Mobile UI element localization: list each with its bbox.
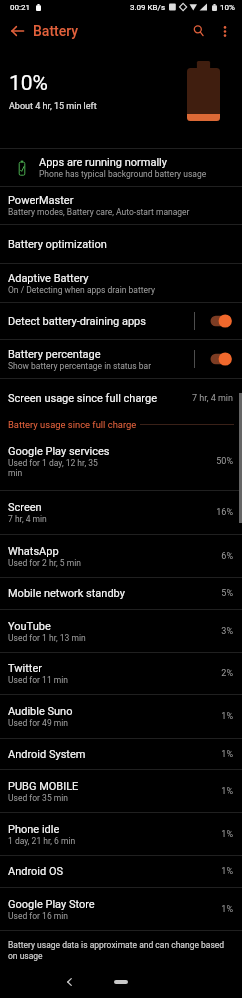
staticText: Google Play services (8, 445, 110, 458)
staticText: 2% (215, 668, 233, 679)
staticText: 1% (215, 866, 233, 877)
staticText: Used for 2 hr, 5 min (8, 558, 81, 568)
button[interactable]: Android OS (0, 856, 242, 887)
staticText: PUBG MOBILE (8, 780, 79, 793)
staticText: Used for 49 min (8, 718, 68, 728)
button[interactable]: Screen usage since full charge (0, 379, 242, 417)
button[interactable]: Battery percentage (0, 340, 242, 378)
staticText: Phone idle (8, 823, 60, 836)
button[interactable]: Toggle (209, 349, 233, 369)
button[interactable]: Google Play services (0, 432, 242, 490)
staticText: Adaptive Battery (8, 272, 89, 285)
staticText: Used for 1 hr, 13 min (8, 633, 86, 643)
button[interactable]: Android System (0, 739, 242, 769)
staticText: 3.09 KB/s (130, 3, 166, 12)
staticText: Battery usage since full charge (8, 419, 137, 430)
staticText: 16% (215, 507, 233, 518)
staticText: 1% (215, 786, 233, 797)
staticText: Battery optimization (8, 238, 107, 251)
staticText: Google Play Store (8, 898, 95, 911)
staticText: Show battery percentage in status bar (8, 361, 152, 371)
button[interactable]: Home (114, 980, 128, 984)
button[interactable]: Detect battery-draining apps (0, 303, 242, 339)
button[interactable]: PowerMaster (0, 187, 242, 224)
staticText: 10% (220, 3, 235, 12)
staticText: Phone has typical background battery usa… (39, 169, 207, 179)
staticText: PowerMaster (8, 194, 74, 207)
staticText: 1% (215, 904, 233, 915)
button[interactable]: Google Play Store (0, 888, 242, 930)
staticText: Used for 35 min (8, 793, 68, 803)
staticText: 7 hr, 4 min (191, 393, 233, 404)
button[interactable]: Apps are running normally (0, 149, 242, 186)
button[interactable]: Toggle (209, 311, 233, 331)
staticText: Mobile network standby (8, 587, 125, 600)
button[interactable]: Screen (0, 491, 242, 534)
staticText: Audible Suno (8, 705, 73, 718)
staticText: 1% (215, 829, 233, 840)
staticText: Screen (8, 501, 42, 514)
button[interactable]: Mobile network standby (0, 578, 242, 609)
button[interactable]: Twitter (0, 653, 242, 694)
button[interactable]: Back (6, 20, 28, 42)
staticText: 10% (9, 71, 48, 96)
staticText: On / Detecting when apps drain battery (8, 285, 155, 295)
staticText: 5% (215, 588, 233, 599)
staticText: Twitter (8, 662, 42, 675)
staticText: Android System (8, 748, 86, 761)
staticText: 00:21 (10, 3, 30, 12)
staticText: About 4 hr, 15 min left (9, 101, 97, 112)
staticText: Battery percentage (8, 348, 101, 361)
staticText: Used for 16 min (8, 911, 68, 921)
button[interactable]: Phone idle (0, 813, 242, 855)
staticText: WhatsApp (8, 545, 59, 558)
staticText: 1% (215, 749, 233, 760)
staticText: YouTube (8, 620, 51, 633)
button[interactable]: YouTube (0, 610, 242, 652)
button[interactable]: Adaptive Battery (0, 264, 242, 302)
button[interactable]: PUBG MOBILE (0, 770, 242, 812)
staticText: 1 day, 21 hr, 6 min (8, 836, 76, 846)
staticText: Screen usage since full charge (8, 392, 157, 405)
staticText: Battery usage data is approximate and ca… (8, 940, 234, 961)
staticText: Used for 1 day, 12 hr, 35 min (8, 458, 98, 478)
button[interactable]: WhatsApp (0, 535, 242, 577)
button[interactable]: Back (57, 970, 81, 994)
staticText: Detect battery-draining apps (8, 315, 146, 328)
staticText: 7 hr, 4 min (8, 514, 47, 524)
staticText: Battery (33, 23, 79, 39)
button[interactable]: Search (188, 20, 210, 42)
button[interactable]: More options (215, 21, 235, 41)
staticText: 1% (215, 711, 233, 722)
button[interactable]: Battery optimization (0, 225, 242, 263)
staticText: Battery modes, Battery care, Auto-start … (8, 207, 190, 217)
staticText: 3% (215, 626, 233, 637)
staticText: Apps are running normally (39, 156, 167, 169)
staticText: 6% (215, 551, 233, 562)
button[interactable]: Audible Suno (0, 695, 242, 738)
staticText: Android OS (8, 865, 64, 878)
staticText: 50% (215, 456, 233, 467)
staticText: Used for 11 min (8, 675, 68, 685)
